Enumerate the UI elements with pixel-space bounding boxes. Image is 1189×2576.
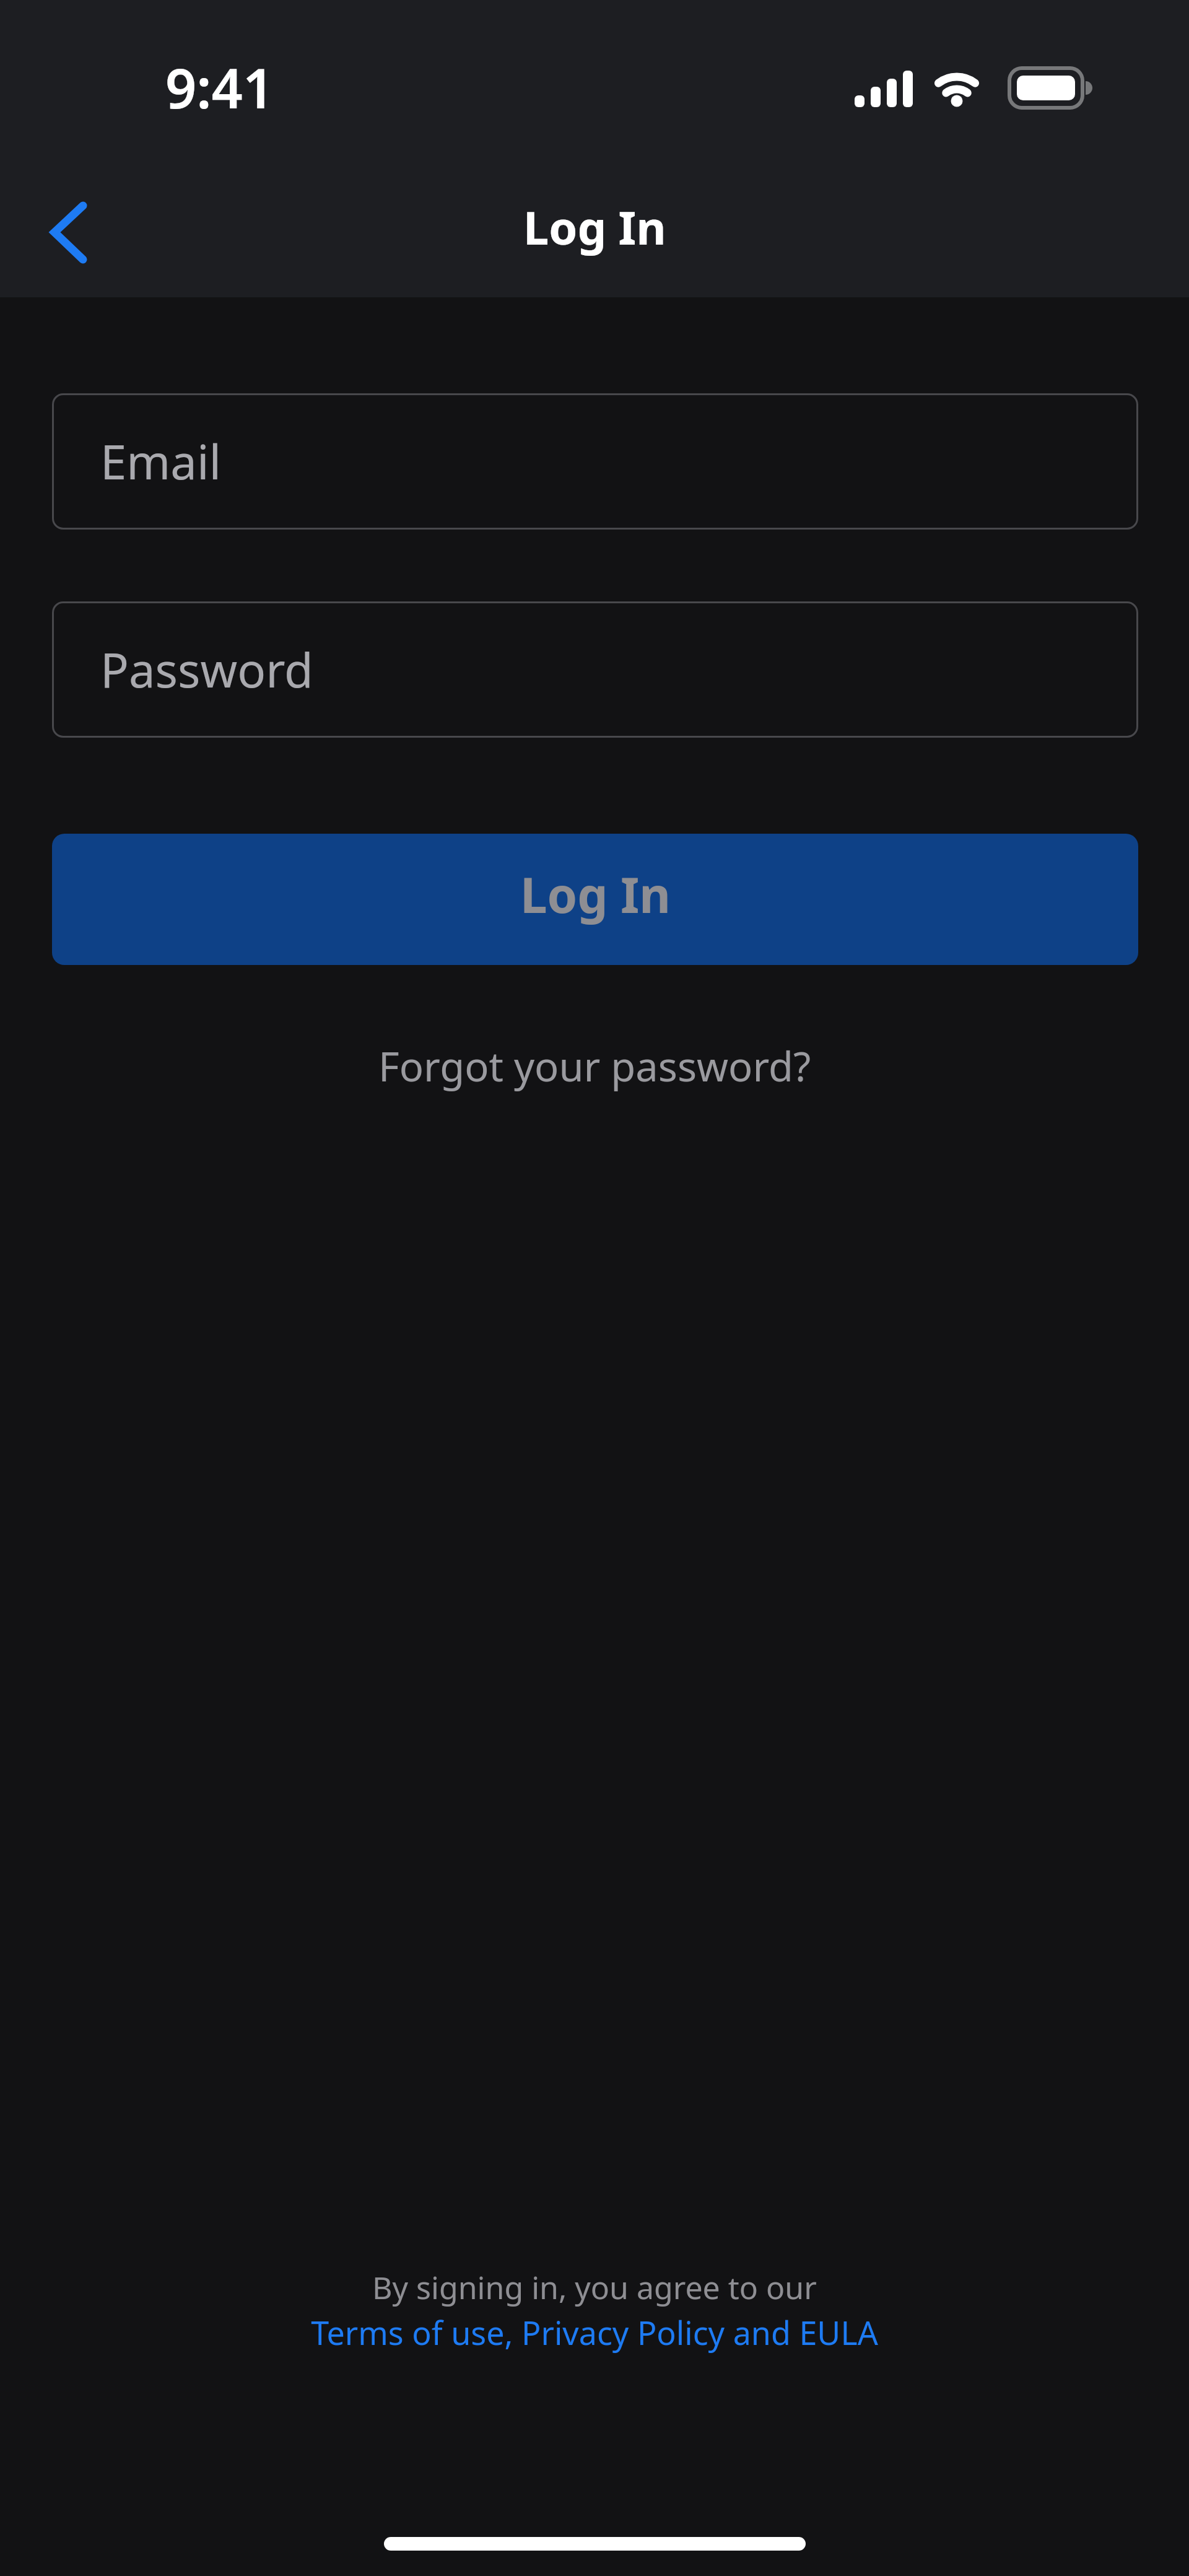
staticText: By signing in, you agree to our: [372, 2266, 817, 2308]
button[interactable]: Password: [52, 601, 1138, 738]
staticText: Log In: [520, 862, 671, 927]
button[interactable]: Forgot your password?: [0, 1035, 1189, 1097]
button[interactable]: Email: [52, 393, 1138, 530]
staticText: Log In: [523, 196, 666, 258]
button[interactable]: Terms of use, Privacy Policy and EULA: [0, 2304, 1189, 2360]
staticText: Terms of use, Privacy Policy and EULA: [311, 2310, 878, 2354]
staticText: 9:41: [165, 50, 274, 112]
staticText: Forgot your password?: [378, 1039, 811, 1094]
staticText: Email: [100, 429, 222, 494]
button[interactable]: Log In: [52, 834, 1138, 965]
button[interactable]: [30, 193, 110, 274]
staticText: Password: [100, 637, 313, 702]
